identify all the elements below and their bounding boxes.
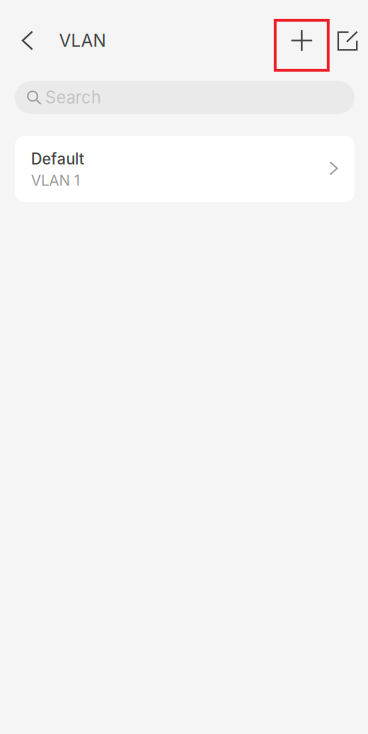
button[interactable]: Back [9, 14, 46, 66]
button[interactable]: Edit [328, 14, 366, 66]
button[interactable]: Add VLAN [275, 10, 328, 70]
button[interactable]: Search [15, 81, 354, 114]
staticText: VLAN 1 [31, 172, 80, 189]
staticText: Search [45, 87, 101, 108]
staticText: Default [31, 150, 84, 168]
button[interactable]: Default [15, 136, 354, 202]
staticText: VLAN [59, 30, 106, 51]
